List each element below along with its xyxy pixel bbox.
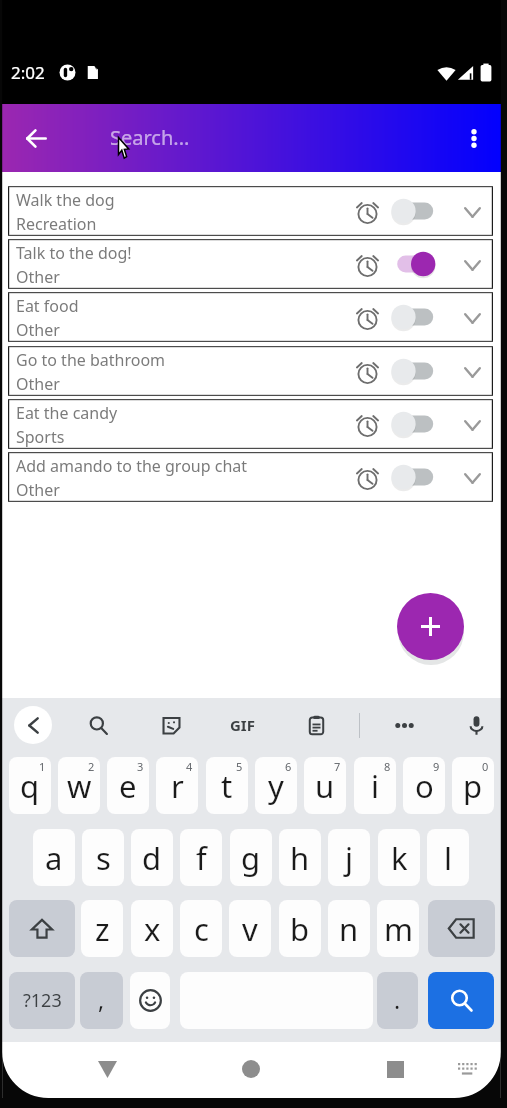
button[interactable]: Toggle reminder <box>389 463 445 491</box>
staticText: q <box>20 765 40 807</box>
button[interactable]: GIF <box>220 706 264 744</box>
button[interactable]: ?123 <box>9 972 75 1029</box>
staticText: 3 <box>137 759 144 774</box>
staticText: Go to the bathroom <box>16 349 166 371</box>
button[interactable]: t <box>206 757 248 814</box>
staticText: d <box>142 837 162 879</box>
button[interactable]: j <box>328 829 370 886</box>
button[interactable]: Expand <box>456 302 488 334</box>
button[interactable]: h <box>279 829 321 886</box>
button[interactable]: Home <box>224 1042 278 1096</box>
button[interactable]: Toggle reminder <box>389 357 445 385</box>
staticText: c <box>194 908 209 950</box>
staticText: z <box>95 908 110 950</box>
staticText: o <box>415 765 434 807</box>
button[interactable]: Expand <box>456 249 488 281</box>
staticText: , <box>98 984 105 1015</box>
staticText: r <box>171 765 184 807</box>
button[interactable]: Go to the bathroom <box>8 346 493 396</box>
button[interactable]: Talk to the dog! <box>8 239 493 289</box>
staticText: i <box>371 765 379 807</box>
button[interactable]: c <box>180 900 222 957</box>
staticText: Search... <box>110 124 190 151</box>
staticText: 9 <box>433 759 440 774</box>
button[interactable]: Expand <box>456 462 488 494</box>
button[interactable]: k <box>378 829 420 886</box>
button[interactable]: Add task <box>397 593 464 660</box>
button[interactable]: Add amando to the group chat <box>8 452 493 502</box>
button[interactable]: Stickers <box>152 706 190 744</box>
button[interactable]: n <box>328 900 370 957</box>
button[interactable]: Recent apps <box>368 1042 422 1096</box>
staticText: Other <box>16 319 60 341</box>
button[interactable]: Voice input <box>457 706 495 744</box>
staticText: h <box>290 837 310 879</box>
staticText: v <box>242 908 258 950</box>
button[interactable]: Clipboard <box>297 706 335 744</box>
button[interactable]: More options <box>452 116 496 160</box>
button[interactable]: r <box>156 757 198 814</box>
staticText: Recreation <box>16 213 97 235</box>
staticText: Talk to the dog! <box>16 242 132 264</box>
button[interactable]: Toggle reminder <box>389 250 445 278</box>
button[interactable]: f <box>180 829 222 886</box>
button[interactable]: Expand <box>456 356 488 388</box>
staticText: y <box>268 765 284 807</box>
button[interactable]: Walk the dog <box>8 186 493 236</box>
button[interactable]: Toggle reminder <box>389 197 445 225</box>
staticText: GIF <box>230 715 255 735</box>
button[interactable]: Backspace <box>428 900 495 957</box>
button[interactable]: Toggle reminder <box>389 303 445 331</box>
button[interactable]: o <box>403 757 445 814</box>
button[interactable]: b <box>279 900 321 957</box>
button[interactable]: Search <box>428 972 494 1029</box>
button[interactable]: Search <box>79 706 117 744</box>
staticText: 6 <box>285 759 292 774</box>
button[interactable]: v <box>229 900 271 957</box>
button[interactable]: x <box>131 900 173 957</box>
button[interactable]: e <box>107 757 149 814</box>
button[interactable]: , <box>80 972 123 1029</box>
staticText: 7 <box>334 759 341 774</box>
button[interactable]: Switch keyboard <box>444 1046 488 1090</box>
staticText: g <box>241 837 261 879</box>
button[interactable]: s <box>82 829 124 886</box>
button[interactable]: . <box>377 972 418 1029</box>
button[interactable]: Emoji <box>130 972 170 1029</box>
button[interactable]: Eat the candy <box>8 399 493 449</box>
button[interactable]: Expand <box>456 196 488 228</box>
button[interactable]: Back <box>12 114 60 162</box>
staticText: Walk the dog <box>16 189 115 211</box>
button[interactable]: l <box>427 829 469 886</box>
staticText: . <box>394 984 401 1015</box>
button[interactable]: m <box>377 900 419 957</box>
button[interactable]: q <box>9 757 51 814</box>
button[interactable]: Shift <box>9 900 75 957</box>
button[interactable]: a <box>33 829 75 886</box>
staticText: 8 <box>384 759 391 774</box>
button[interactable]: d <box>131 829 173 886</box>
button[interactable]: Back <box>80 1042 134 1096</box>
button[interactable]: z <box>81 900 123 957</box>
staticText: f <box>196 837 207 879</box>
button[interactable]: More <box>385 706 423 744</box>
staticText: 2 <box>88 759 95 774</box>
button[interactable]: p <box>452 757 494 814</box>
button[interactable]: w <box>58 757 100 814</box>
staticText: 2:02 <box>11 61 45 84</box>
button[interactable]: Expand <box>456 409 488 441</box>
button[interactable]: Toggle reminder <box>389 410 445 438</box>
button[interactable]: i <box>354 757 396 814</box>
staticText: 0 <box>482 759 489 774</box>
button[interactable]: Eat food <box>8 292 493 342</box>
button[interactable]: y <box>255 757 297 814</box>
button[interactable]: g <box>230 829 272 886</box>
staticText: Other <box>16 479 60 501</box>
staticText: x <box>144 908 161 950</box>
button[interactable]: u <box>304 757 346 814</box>
staticText: s <box>96 837 111 879</box>
button[interactable]: Close toolbar <box>14 706 52 744</box>
staticText: Other <box>16 266 60 288</box>
staticText: n <box>339 908 359 950</box>
